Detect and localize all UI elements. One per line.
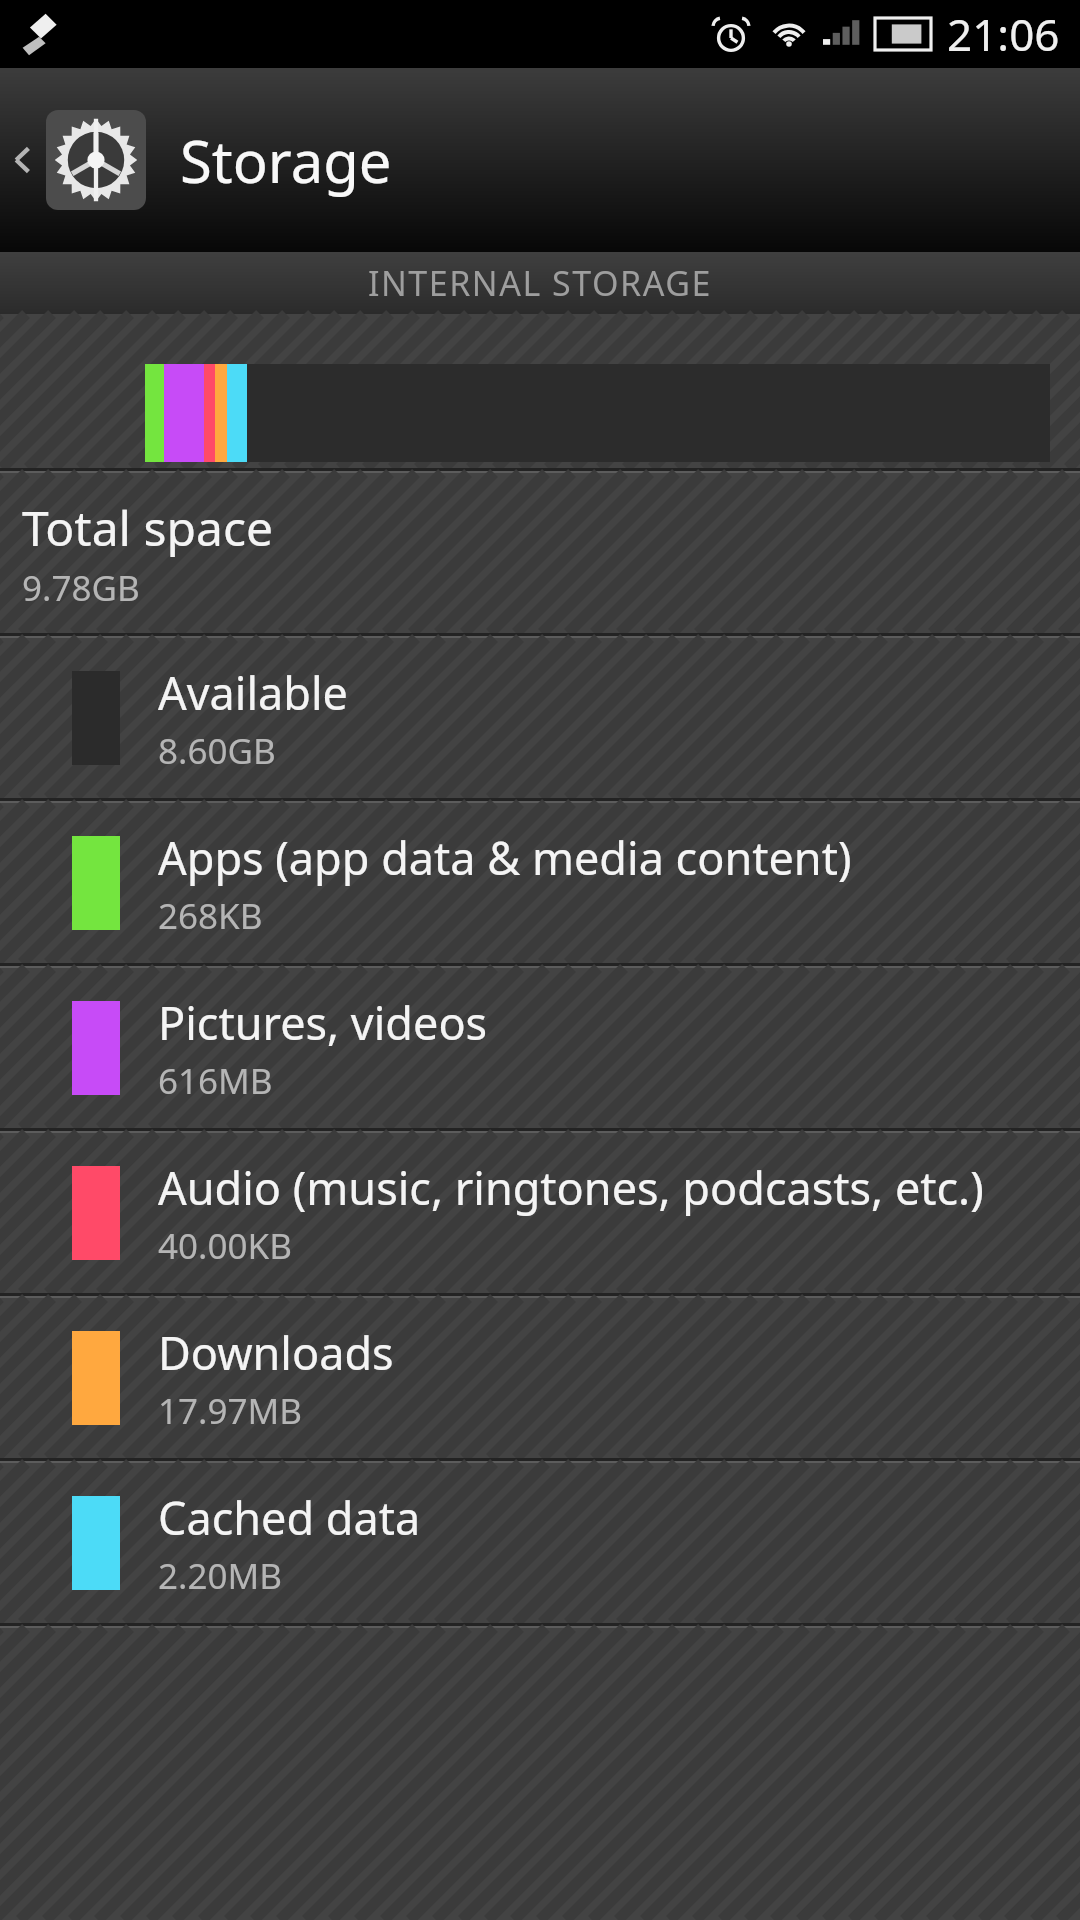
staticText: Audio (music, ringtones, podcasts, etc.): [158, 1157, 984, 1218]
staticText: 21:06: [947, 4, 1060, 64]
staticText: 8.60GB: [158, 727, 276, 775]
button[interactable]: Cached data: [0, 1463, 1080, 1623]
staticText: Available: [158, 662, 348, 723]
staticText: 9.78GB: [22, 564, 140, 612]
button[interactable]: Apps (app data & media content): [0, 803, 1080, 963]
button[interactable]: Total space: [0, 473, 1080, 633]
staticText: INTERNAL STORAGE: [368, 260, 712, 306]
staticText: Pictures, videos: [158, 992, 488, 1053]
staticText: Apps (app data & media content): [158, 827, 852, 888]
button[interactable]: Downloads: [0, 1298, 1080, 1458]
staticText: 616MB: [158, 1057, 273, 1105]
staticText: Total space: [22, 495, 274, 560]
staticText: Storage: [180, 121, 392, 200]
button[interactable]: Audio (music, ringtones, podcasts, etc.): [0, 1133, 1080, 1293]
staticText: 17.97MB: [158, 1387, 302, 1435]
button[interactable]: Available: [0, 638, 1080, 798]
button[interactable]: Navigate up: [0, 68, 1080, 252]
staticText: Downloads: [158, 1322, 394, 1383]
staticText: 2.20MB: [158, 1552, 282, 1600]
button[interactable]: Pictures, videos: [0, 968, 1080, 1128]
staticText: Cached data: [158, 1487, 421, 1548]
staticText: 268KB: [158, 892, 263, 940]
staticText: 40.00KB: [158, 1222, 292, 1270]
